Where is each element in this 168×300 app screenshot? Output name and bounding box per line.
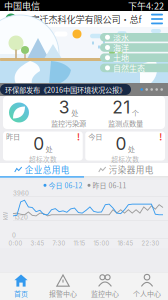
- staticText: 今日 06-12: [48, 180, 82, 190]
- button[interactable]: 淡水: [100, 33, 168, 42]
- button[interactable]: 土地: [100, 53, 168, 62]
- staticText: 企业总用电: [25, 163, 70, 176]
- staticText: 超标次数: [111, 154, 139, 164]
- staticText: 宿迁杰科化学有限公司·总f: [30, 12, 141, 26]
- staticText: 0: [12, 232, 16, 239]
- staticText: 自然生态: [113, 62, 145, 74]
- button[interactable]: 今日 06-12: [43, 180, 82, 190]
- staticText: 环保部发布《2016中国环境状况公报》: [5, 84, 126, 95]
- staticText: 处: [46, 144, 53, 154]
- staticText: 18:45: [117, 240, 133, 247]
- staticText: 0:00: [8, 240, 22, 247]
- button[interactable]: 污染器用电: [84, 163, 168, 176]
- staticText: 处: [128, 144, 135, 154]
- staticText: 3:45: [30, 240, 44, 247]
- staticText: !: [77, 130, 80, 143]
- staticText: 0: [115, 133, 126, 154]
- staticText: 个人中心: [133, 288, 161, 298]
- staticText: 3960: [13, 190, 29, 197]
- staticText: 今日: [88, 131, 102, 142]
- staticText: 监测点数量: [108, 118, 143, 128]
- staticText: !: [159, 130, 162, 143]
- staticText: 15:00: [93, 240, 109, 247]
- button[interactable]: 监控中心: [84, 271, 126, 300]
- staticText: 下午4:22: [128, 0, 164, 12]
- staticText: kW: [1, 212, 9, 221]
- button[interactable]: 自然生态: [100, 64, 168, 72]
- staticText: 污染器用电: [109, 163, 154, 176]
- staticText: 监控污染源: [51, 118, 86, 128]
- button[interactable]: 企业总用电: [0, 163, 84, 176]
- staticText: 7:30: [52, 240, 65, 247]
- staticText: 1320: [14, 214, 28, 221]
- staticText: 处: [71, 107, 78, 118]
- staticText: 首页: [14, 288, 28, 298]
- staticText: 监控中心: [91, 288, 119, 298]
- staticText: 土地: [113, 52, 129, 63]
- staticText: 22:30: [141, 240, 159, 247]
- staticText: 11:15: [73, 240, 85, 247]
- staticText: 超标次数: [29, 154, 57, 164]
- button[interactable]: 昨日 06-11: [87, 180, 126, 190]
- staticText: 个: [132, 107, 139, 118]
- button[interactable]: 个人中心: [126, 271, 168, 300]
- staticText: 0: [33, 133, 44, 154]
- staticText: 3: [59, 97, 70, 118]
- staticText: 海洋: [113, 42, 129, 53]
- button[interactable]: 报警中心: [42, 271, 84, 300]
- staticText: 昨日: [6, 131, 20, 142]
- staticText: 昨日 06-11: [92, 180, 126, 190]
- button[interactable]: 首页: [0, 271, 42, 300]
- staticText: 淡水: [113, 31, 129, 43]
- staticText: 21: [112, 97, 130, 118]
- staticText: 中国电信: [4, 0, 40, 12]
- staticText: 报警中心: [49, 288, 77, 298]
- button[interactable]: 菜单: [149, 12, 165, 26]
- button[interactable]: 海洋: [100, 43, 168, 52]
- button[interactable]: 公司标志: [5, 13, 17, 25]
- button[interactable]: 环保部发布《2016中国环境状况公报》: [0, 84, 131, 95]
